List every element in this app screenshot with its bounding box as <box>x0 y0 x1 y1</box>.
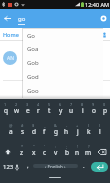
staticText: b <box>65 148 69 157</box>
staticText: t <box>48 106 51 115</box>
staticText: , <box>27 162 29 170</box>
staticText: e <box>26 106 30 115</box>
button[interactable]: , <box>22 162 33 172</box>
button[interactable]: AN <box>0 41 110 80</box>
staticText: 3 <box>26 102 29 107</box>
button[interactable]: Gob <box>23 56 103 70</box>
staticText: n <box>75 148 80 157</box>
staticText: q <box>4 106 8 115</box>
staticText: ! <box>77 144 79 149</box>
staticText: ' <box>44 144 45 149</box>
staticText: & <box>54 123 57 128</box>
button[interactable]: Enter <box>89 162 110 172</box>
staticText: k <box>87 127 91 136</box>
staticText: $ <box>32 123 35 128</box>
button[interactable]: Go <box>23 29 103 42</box>
button[interactable]: Voice search <box>96 9 110 28</box>
staticText: w <box>14 106 20 115</box>
button[interactable]: God <box>23 70 103 84</box>
staticText: " <box>33 144 35 149</box>
staticText: y <box>59 106 63 115</box>
button[interactable]: ( <box>83 120 94 141</box>
button[interactable]: - <box>61 120 72 141</box>
button[interactable]: 4 <box>33 99 44 120</box>
button[interactable]: 7 <box>66 99 77 120</box>
staticText: Goo <box>27 87 39 95</box>
button[interactable]: : <box>50 141 61 162</box>
staticText: g <box>54 127 58 136</box>
staticText: 1 <box>4 102 7 107</box>
staticText: s <box>21 127 25 136</box>
staticText: a <box>9 127 13 136</box>
button[interactable]: 8 <box>77 99 88 120</box>
button[interactable]: . <box>78 162 89 172</box>
button[interactable]: ? <box>83 141 94 162</box>
staticText: 5 <box>48 102 51 107</box>
staticText: Home <box>3 31 19 38</box>
staticText: God <box>27 73 39 81</box>
staticText: ? <box>88 144 90 149</box>
button[interactable]: Backspace <box>94 141 110 162</box>
staticText: + <box>76 123 79 128</box>
button[interactable]: 9 <box>88 99 99 120</box>
button[interactable]: ) <box>94 120 105 141</box>
button[interactable]: 2 <box>11 99 22 120</box>
staticText: @ <box>9 123 13 128</box>
staticText: 4 <box>37 102 40 107</box>
staticText: : <box>55 144 57 149</box>
button[interactable]: ! <box>72 141 83 162</box>
button[interactable] <box>0 81 110 109</box>
button[interactable]: ' <box>39 141 50 162</box>
button[interactable]: ; <box>61 141 72 162</box>
button[interactable]: 6 <box>55 99 66 120</box>
button[interactable]: 123 <box>0 162 22 172</box>
button[interactable]: _ <box>39 120 50 141</box>
staticText: Goa <box>27 45 39 53</box>
staticText: j <box>77 127 79 136</box>
button[interactable]: Groups <box>96 28 110 41</box>
staticText: 7 <box>70 102 73 107</box>
staticText: r <box>37 106 40 115</box>
button[interactable]: 3 <box>22 99 33 120</box>
staticText: p <box>103 106 107 115</box>
button[interactable]: Goa <box>23 42 103 56</box>
button[interactable]: 1 <box>0 99 11 120</box>
staticText: AN <box>7 55 14 62</box>
staticText: x <box>32 148 36 157</box>
staticText: 8 <box>81 102 84 107</box>
button[interactable]: # <box>17 120 28 141</box>
button[interactable]: " <box>28 141 39 162</box>
staticText: 0 <box>103 102 106 107</box>
staticText: l <box>99 127 101 136</box>
staticText: * <box>21 144 24 149</box>
staticText: 12:40 AM <box>85 1 109 8</box>
button[interactable]: ‹ English › <box>33 164 78 168</box>
staticText: o <box>92 106 96 115</box>
staticText: _ <box>44 123 46 128</box>
button[interactable]: Shift <box>0 141 16 162</box>
staticText: 6 <box>59 102 62 107</box>
staticText: f <box>43 127 46 136</box>
button[interactable]: & <box>50 120 61 141</box>
staticText: i <box>82 106 84 115</box>
staticText: h <box>64 127 69 136</box>
staticText: Go <box>27 32 35 40</box>
button[interactable]: 0 <box>99 99 110 120</box>
staticText: ) <box>99 123 101 128</box>
button[interactable]: @ <box>5 120 17 141</box>
button[interactable]: 5 <box>44 99 55 120</box>
button[interactable]: Home <box>0 28 22 41</box>
staticText: 2 <box>15 102 18 107</box>
button[interactable]: + <box>72 120 83 141</box>
staticText: u <box>69 106 74 115</box>
staticText: d <box>32 127 36 136</box>
staticText: ; <box>66 144 68 149</box>
button[interactable]: $ <box>28 120 39 141</box>
staticText: z <box>20 148 24 157</box>
button[interactable]: * <box>16 141 28 162</box>
button[interactable]: Back <box>0 9 14 28</box>
staticText: - <box>66 123 68 128</box>
staticText: v <box>54 148 58 157</box>
staticText: 123 <box>3 163 14 171</box>
button[interactable]: Goo <box>23 84 103 98</box>
